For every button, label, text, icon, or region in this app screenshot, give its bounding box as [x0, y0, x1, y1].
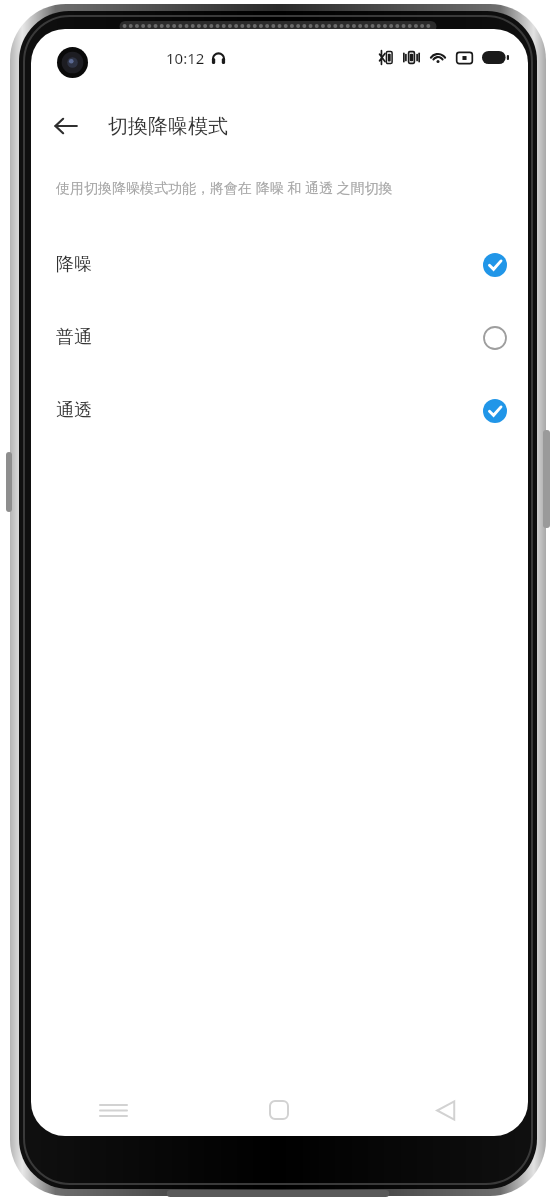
staticText: 切換降噪模式	[108, 114, 228, 139]
button[interactable]: 普通	[31, 301, 528, 374]
staticText: 普通	[56, 326, 92, 349]
staticText: 降噪	[56, 253, 92, 276]
button[interactable]: Back	[362, 1084, 528, 1136]
button[interactable]: 通透	[31, 374, 528, 447]
button[interactable]: Recent apps	[31, 1084, 196, 1136]
button[interactable]: Home	[196, 1084, 362, 1136]
staticText: 通透	[56, 399, 92, 422]
button[interactable]: 降噪	[31, 228, 528, 301]
button[interactable]: Back	[40, 100, 92, 152]
staticText: 使用切換降噪模式功能，將會在 降噪 和 通透 之間切換	[56, 178, 393, 197]
staticText: 10:12	[166, 48, 205, 68]
